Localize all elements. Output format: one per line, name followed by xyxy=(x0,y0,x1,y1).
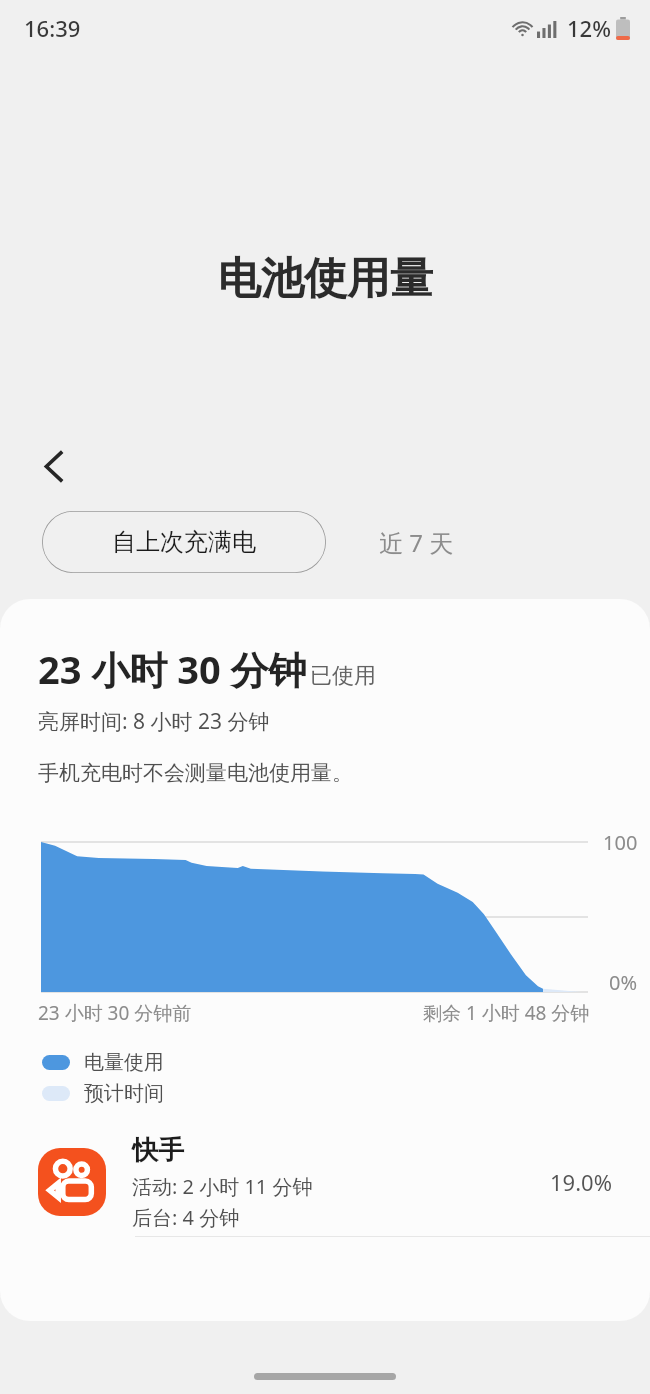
staticText: 预计时间 xyxy=(84,1081,164,1106)
button[interactable]: Back xyxy=(26,437,84,495)
staticText: 23 小时 30 分钟 xyxy=(38,643,307,695)
staticText: 电量使用 xyxy=(84,1050,164,1075)
button[interactable]: 自上次充满电 xyxy=(42,511,326,573)
staticText: 12% xyxy=(567,13,611,43)
staticText: 亮屏时间: 8 小时 23 分钟 xyxy=(38,707,270,736)
staticText: 后台: 4 分钟 xyxy=(132,1204,240,1231)
staticText: 已使用 xyxy=(310,662,376,690)
staticText: 快手 xyxy=(132,1134,184,1167)
staticText: 近 7 天 xyxy=(379,526,454,559)
staticText: 23 小时 30 分钟前 xyxy=(38,1000,192,1026)
staticText: 19.0% xyxy=(550,1167,612,1197)
staticText: 自上次充满电 xyxy=(112,527,256,557)
staticText: 100 xyxy=(603,829,638,856)
staticText: 电池使用量 xyxy=(218,252,433,306)
button[interactable]: 近 7 天 xyxy=(326,511,506,573)
staticText: 手机充电时不会测量电池使用量。 xyxy=(38,760,353,786)
staticText: 16:39 xyxy=(24,13,81,43)
staticText: 活动: 2 小时 11 分钟 xyxy=(132,1173,313,1200)
staticText: 0% xyxy=(609,969,638,996)
staticText: 剩余 1 小时 48 分钟 xyxy=(423,1000,590,1026)
button[interactable]: 快手 xyxy=(0,1128,650,1236)
